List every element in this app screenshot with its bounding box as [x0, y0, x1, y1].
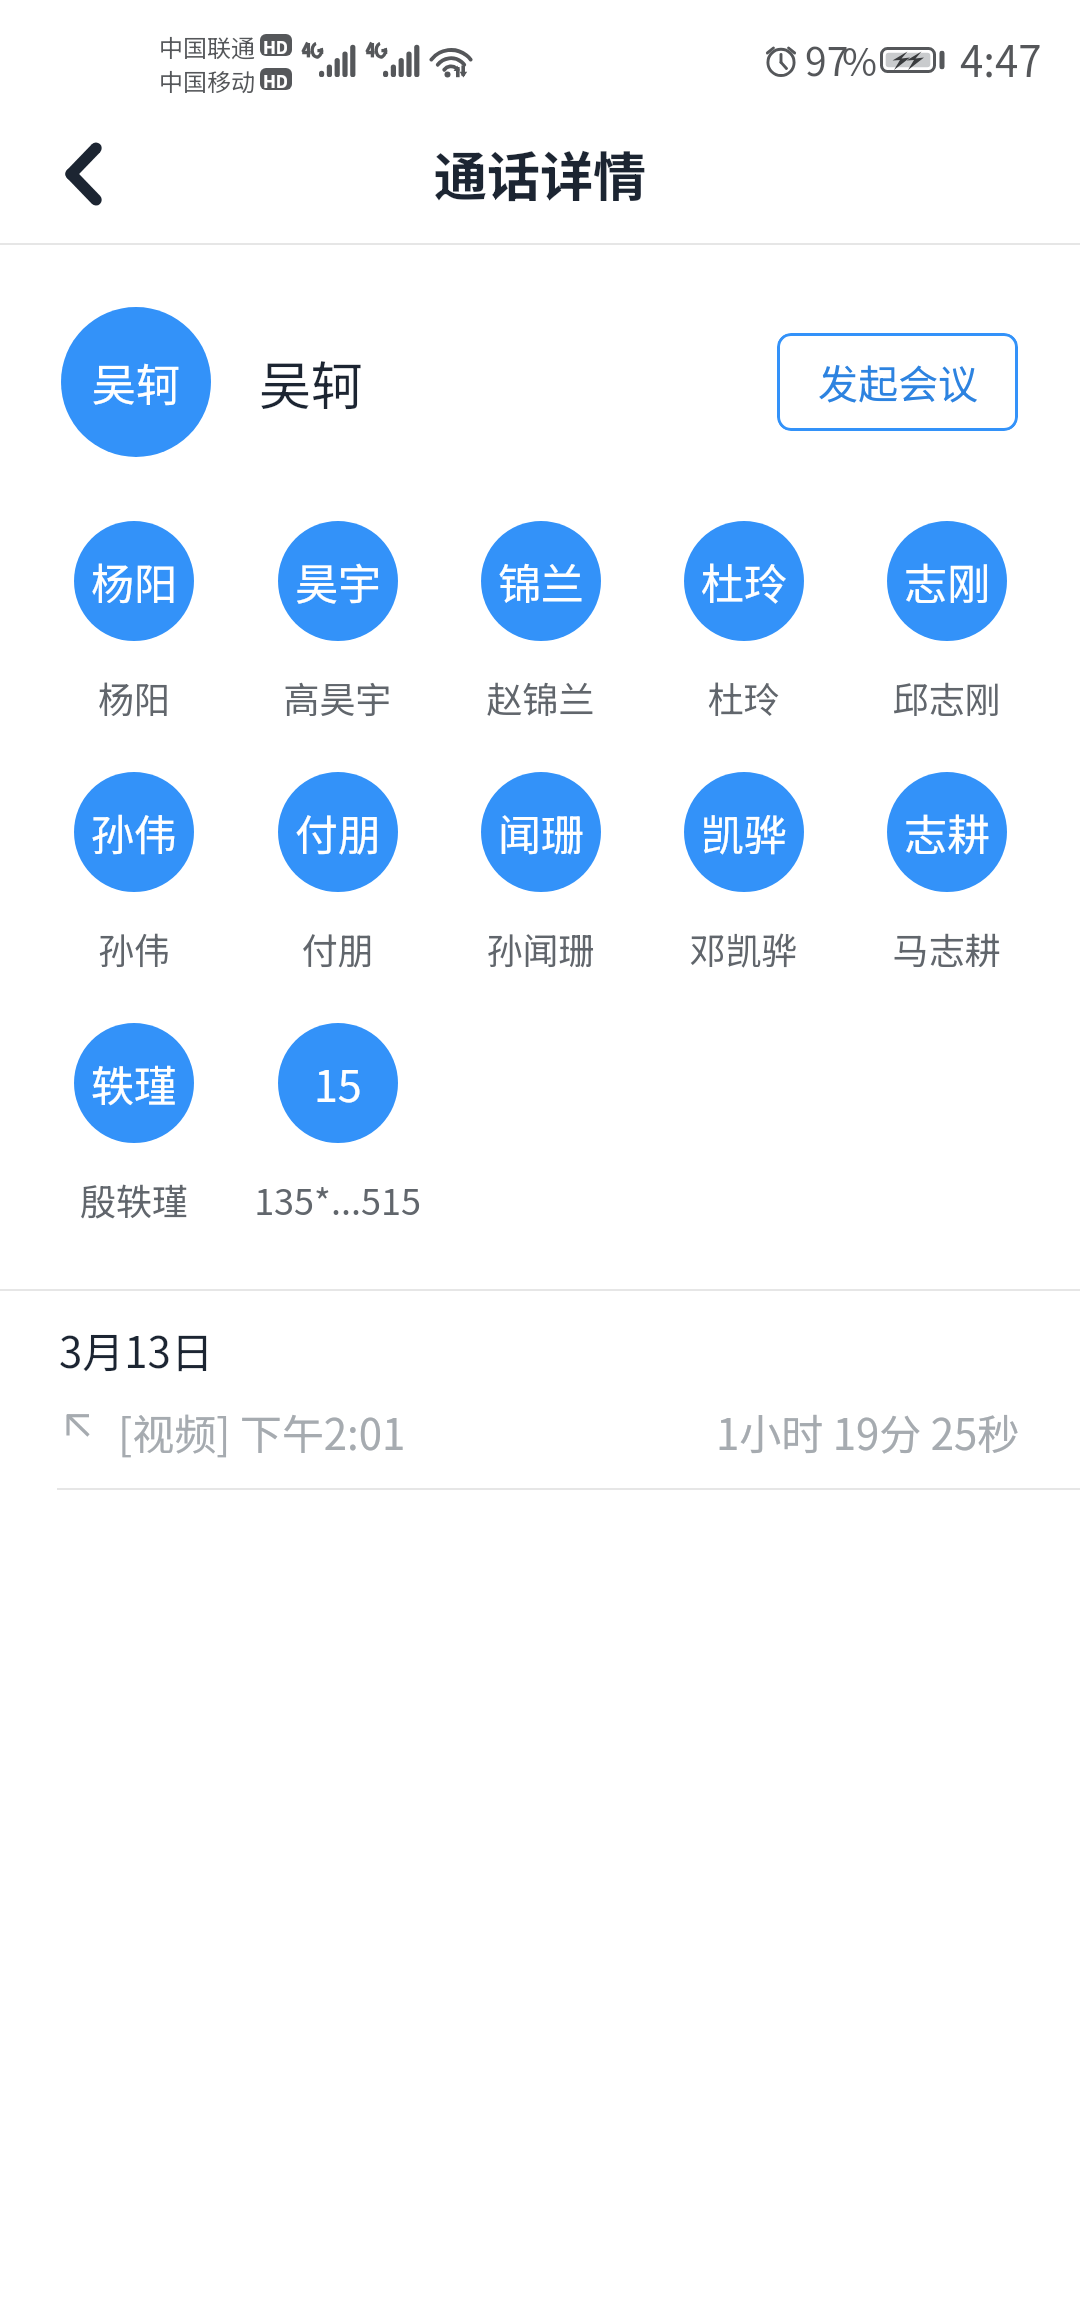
staticText: 马志耕 [845, 922, 1048, 974]
staticText: 昊宇 [295, 550, 381, 612]
staticText: 4:47 [960, 28, 1042, 89]
button[interactable]: 15 [236, 1023, 439, 1225]
staticText: 志刚 [904, 550, 990, 612]
button[interactable]: 凯骅 [642, 772, 845, 974]
staticText: 孙伟 [91, 801, 177, 863]
staticText: 中国联通 [159, 29, 255, 64]
staticText: HD [263, 34, 289, 56]
button[interactable]: 志耕 [845, 772, 1048, 974]
staticText: 中国移动 [159, 63, 255, 98]
staticText: 付朋 [295, 801, 381, 863]
staticText: HD [263, 68, 289, 90]
staticText: 15 [314, 1052, 362, 1114]
staticText: 邱志刚 [845, 671, 1048, 723]
staticText: 孙闻珊 [439, 922, 642, 974]
staticText: 杜玲 [642, 671, 845, 723]
staticText: 3月13日 [59, 1319, 213, 1380]
staticText: 孙伟 [32, 922, 236, 974]
staticText: 吴轲 [92, 350, 180, 414]
staticText: 1小时 19分 25秒 [716, 1401, 1020, 1462]
staticText: 轶瑾 [91, 1052, 177, 1114]
staticText: 135*...515 [236, 1173, 439, 1225]
button[interactable]: [视频] 下午2:01 [0, 1390, 1080, 1454]
staticText: 杨阳 [91, 550, 177, 612]
staticText: 高昊宇 [236, 671, 439, 723]
staticText: 杨阳 [32, 671, 236, 723]
button[interactable]: 发起会议 [777, 333, 1018, 431]
button[interactable]: 杨阳 [32, 521, 236, 723]
staticText: 97 [805, 31, 849, 87]
button[interactable]: 轶瑾 [32, 1023, 236, 1225]
button[interactable]: 付朋 [236, 772, 439, 974]
staticText: 锦兰 [498, 550, 584, 612]
button[interactable]: 志刚 [845, 521, 1048, 723]
button[interactable]: 锦兰 [439, 521, 642, 723]
staticText: 志耕 [904, 801, 990, 863]
button[interactable]: Back [39, 130, 127, 218]
staticText: % [842, 32, 877, 87]
staticText: 殷轶瑾 [32, 1173, 236, 1225]
staticText: 付朋 [236, 922, 439, 974]
button[interactable]: 杜玲 [642, 521, 845, 723]
staticText: [视频] 下午2:01 [118, 1401, 406, 1462]
button[interactable]: 昊宇 [236, 521, 439, 723]
staticText: 邓凯骅 [642, 922, 845, 974]
button[interactable]: 吴轲 头像 [61, 307, 211, 457]
staticText: 通话详情 [434, 135, 646, 212]
staticText: 吴轲 [259, 345, 364, 420]
staticText: 发起会议 [818, 353, 978, 411]
button[interactable]: 孙伟 [32, 772, 236, 974]
button[interactable]: 闻珊 [439, 772, 642, 974]
staticText: 杜玲 [701, 550, 787, 612]
staticText: 闻珊 [498, 801, 584, 863]
staticText: 凯骅 [701, 801, 787, 863]
staticText: 赵锦兰 [439, 671, 642, 723]
